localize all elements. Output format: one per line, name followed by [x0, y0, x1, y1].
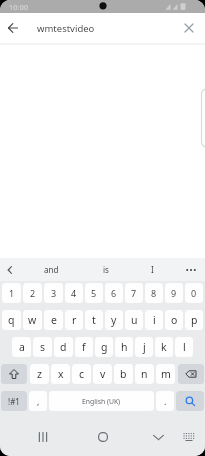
button[interactable]	[181, 20, 197, 36]
staticText: r	[72, 313, 77, 327]
button[interactable]: s	[33, 337, 52, 357]
button[interactable]: o	[165, 310, 183, 330]
button[interactable]	[1, 364, 27, 384]
button[interactable]: k	[155, 337, 173, 357]
staticText: 9	[171, 287, 177, 299]
button[interactable]: h	[115, 337, 133, 357]
button[interactable]	[178, 364, 204, 384]
staticText: y	[111, 313, 117, 327]
button[interactable]: t	[85, 310, 103, 330]
button[interactable]	[94, 428, 112, 446]
button[interactable]: r	[65, 310, 83, 330]
staticText: ,	[37, 395, 40, 407]
staticText: o	[171, 313, 178, 327]
button[interactable]: 8	[145, 283, 163, 303]
button[interactable]	[176, 391, 204, 411]
button[interactable]: ,	[29, 391, 47, 411]
staticText: p	[191, 313, 198, 327]
staticText: 10:00	[9, 2, 29, 12]
staticText: f	[82, 340, 86, 354]
staticText: q	[8, 313, 15, 327]
button[interactable]: a	[12, 337, 31, 357]
staticText: e	[51, 313, 57, 327]
button[interactable]: 0	[185, 283, 203, 303]
button[interactable]	[149, 428, 167, 446]
staticText: 6	[111, 287, 117, 299]
staticText: !#1	[8, 396, 20, 407]
button[interactable]: m	[156, 364, 175, 384]
staticText: i	[153, 313, 156, 327]
button[interactable]: x	[51, 364, 70, 384]
staticText: .	[164, 395, 167, 407]
button[interactable]: z	[30, 364, 49, 384]
staticText: n	[141, 367, 148, 381]
staticText: and	[44, 264, 59, 275]
button[interactable]: 4	[65, 283, 83, 303]
staticText: z	[37, 367, 42, 381]
staticText: English (UK)	[82, 397, 121, 406]
staticText: j	[143, 340, 146, 354]
button[interactable]: q	[2, 310, 21, 330]
button[interactable]: 7	[125, 283, 143, 303]
button[interactable]: !#1	[1, 391, 27, 411]
button[interactable]: b	[114, 364, 133, 384]
staticText: w	[28, 313, 37, 327]
staticText: 8	[151, 287, 157, 299]
button[interactable]: v	[93, 364, 112, 384]
staticText: d	[60, 340, 67, 354]
staticText: 2	[30, 287, 36, 299]
button[interactable]: y	[105, 310, 123, 330]
button[interactable]: 9	[165, 283, 183, 303]
button[interactable]: n	[135, 364, 154, 384]
staticText: 7	[131, 287, 137, 299]
staticText: u	[131, 313, 138, 327]
staticText: 1	[9, 287, 15, 299]
staticText: x	[58, 367, 64, 381]
button[interactable]: i	[145, 310, 163, 330]
staticText: m	[161, 367, 171, 381]
staticText: k	[161, 340, 167, 354]
button[interactable]: j	[135, 337, 153, 357]
button[interactable]: 3	[44, 283, 63, 303]
button[interactable]: d	[54, 337, 73, 357]
staticText: c	[79, 367, 85, 381]
staticText: v	[100, 367, 106, 381]
button[interactable]: is	[91, 258, 121, 281]
staticText: 5	[91, 287, 97, 299]
button[interactable]: 2	[23, 283, 42, 303]
button[interactable]	[182, 261, 200, 279]
button[interactable]: 6	[105, 283, 123, 303]
staticText: 4	[71, 287, 77, 299]
staticText: wmtestvideo	[37, 22, 95, 35]
button[interactable]	[4, 19, 22, 37]
button[interactable]: g	[95, 337, 113, 357]
staticText: is	[103, 264, 109, 275]
button[interactable]	[2, 262, 18, 278]
button[interactable]: e	[44, 310, 63, 330]
staticText: I	[151, 264, 154, 275]
staticText: h	[121, 340, 128, 354]
button[interactable]: c	[72, 364, 91, 384]
button[interactable]: l	[175, 337, 193, 357]
staticText: s	[40, 340, 46, 354]
button[interactable]: and	[36, 258, 66, 281]
button[interactable]: p	[185, 310, 203, 330]
staticText: a	[19, 340, 25, 354]
button[interactable]: 5	[85, 283, 103, 303]
button[interactable]: f	[75, 337, 93, 357]
button[interactable]: 1	[2, 283, 21, 303]
button[interactable]: .	[156, 391, 174, 411]
staticText: 0	[191, 287, 197, 299]
staticText: b	[120, 367, 127, 381]
button[interactable]: I	[137, 258, 167, 281]
staticText: t	[92, 313, 96, 327]
button[interactable]: u	[125, 310, 143, 330]
staticText: g	[101, 340, 108, 354]
button[interactable]: English (UK)	[49, 391, 154, 411]
staticText: l	[183, 340, 186, 354]
button[interactable]	[181, 429, 197, 445]
button[interactable]	[34, 428, 52, 446]
button[interactable]: w	[23, 310, 42, 330]
staticText: 3	[51, 287, 57, 299]
